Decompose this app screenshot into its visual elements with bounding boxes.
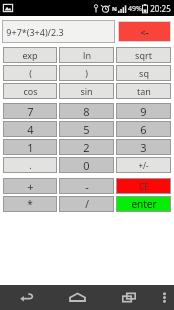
staticText: sin xyxy=(80,85,93,97)
button[interactable]: sq xyxy=(116,65,171,81)
staticText: enter xyxy=(131,197,157,211)
button[interactable]: Recent apps xyxy=(103,285,154,310)
button[interactable]: cos xyxy=(3,83,57,99)
staticText: ln xyxy=(83,49,91,61)
button[interactable]: CE xyxy=(116,178,171,194)
button[interactable]: More options xyxy=(154,285,174,310)
button[interactable]: Back xyxy=(0,285,52,310)
button[interactable]: ( xyxy=(3,65,57,81)
button[interactable]: sqrt xyxy=(116,47,171,63)
staticText: 5 xyxy=(83,122,90,137)
button[interactable]: 9+7*(3+4)/2.3 xyxy=(2,20,115,43)
button[interactable]: 5 xyxy=(59,121,114,137)
staticText: 20:25 xyxy=(150,3,171,14)
button[interactable]: enter xyxy=(116,196,171,212)
button[interactable]: 8 xyxy=(59,103,114,119)
staticText: sqrt xyxy=(135,49,152,61)
button[interactable]: 2 xyxy=(59,139,114,155)
staticText: 0 xyxy=(83,158,90,173)
staticText: ( xyxy=(29,67,32,79)
button[interactable]: Home xyxy=(52,285,103,310)
staticText: cos xyxy=(23,85,38,97)
staticText: exp xyxy=(22,49,38,61)
button[interactable]: 7 xyxy=(3,103,57,119)
staticText: 4 xyxy=(27,122,34,137)
button[interactable]: . xyxy=(3,157,57,173)
button[interactable]: 6 xyxy=(116,121,171,137)
button[interactable]: exp xyxy=(3,47,57,63)
staticText: 3 xyxy=(140,140,147,155)
button[interactable]: 1 xyxy=(3,139,57,155)
staticText: 7 xyxy=(27,104,34,119)
button[interactable]: tan xyxy=(116,83,171,99)
staticText: sq xyxy=(139,67,149,79)
staticText: 2 xyxy=(83,140,90,155)
button[interactable]: ) xyxy=(59,65,114,81)
button[interactable]: 4 xyxy=(3,121,57,137)
staticText: 9 xyxy=(140,104,147,119)
button[interactable]: - xyxy=(59,178,114,194)
staticText: +/- xyxy=(138,160,149,171)
staticText: 9+7*(3+4)/2.3 xyxy=(6,26,64,38)
button[interactable]: 0 xyxy=(59,157,114,173)
staticText: tan xyxy=(137,85,151,97)
button[interactable]: ln xyxy=(59,47,114,63)
staticText: / xyxy=(85,197,89,211)
button[interactable]: sin xyxy=(59,83,114,99)
staticText: CE xyxy=(139,181,149,192)
staticText: 49% xyxy=(128,4,142,14)
button[interactable]: 3 xyxy=(116,139,171,155)
staticText: + xyxy=(27,179,34,194)
staticText: . xyxy=(29,159,32,171)
staticText: ) xyxy=(85,67,88,79)
staticText: 8 xyxy=(83,104,90,119)
staticText: 6 xyxy=(140,122,147,137)
button[interactable]: + xyxy=(3,178,57,194)
button[interactable]: * xyxy=(3,196,57,212)
staticText: N xyxy=(112,5,117,13)
button[interactable]: 9 xyxy=(116,103,171,119)
staticText: - xyxy=(85,179,89,194)
button[interactable]: Backspace xyxy=(118,21,171,42)
button[interactable]: +/- xyxy=(116,157,171,173)
button[interactable]: / xyxy=(59,196,114,212)
staticText: 1 xyxy=(27,140,34,155)
staticText: <- xyxy=(140,26,149,38)
staticText: * xyxy=(27,197,33,211)
